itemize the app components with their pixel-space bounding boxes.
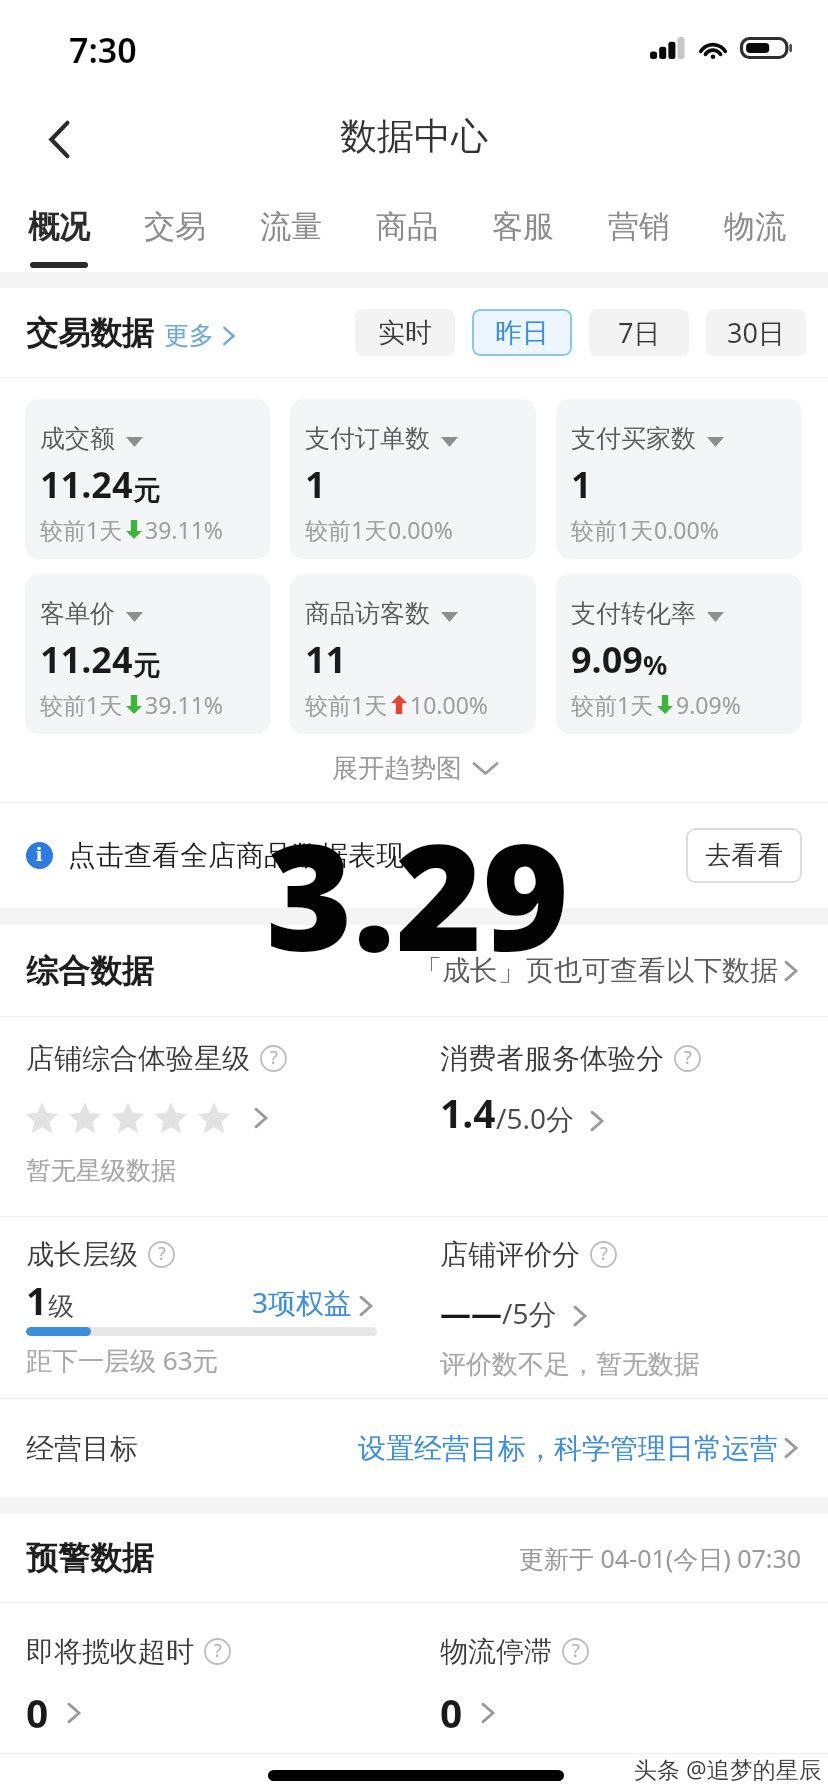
staticText: 设置经营目标，科学管理日常运营 xyxy=(358,1431,778,1466)
staticText: 元 xyxy=(133,649,160,683)
button[interactable]: 商品 xyxy=(349,190,465,272)
staticText: 1.4 xyxy=(440,1086,496,1139)
staticText: 0 xyxy=(26,1686,49,1739)
staticText: 支付订单数 xyxy=(305,423,430,454)
staticText: 7:30 xyxy=(69,27,137,73)
staticText: 展开趋势图 xyxy=(332,752,462,785)
button[interactable]: 客单价 xyxy=(25,574,270,734)
button[interactable]: 物流 xyxy=(697,190,813,272)
staticText: 支付转化率 xyxy=(571,598,696,629)
staticText: 即将揽收超时 xyxy=(26,1634,194,1669)
staticText: 11.24 xyxy=(40,460,133,509)
button[interactable]: 成长层级 xyxy=(0,1217,413,1398)
staticText: ? xyxy=(158,1241,166,1266)
button[interactable]: 流量 xyxy=(233,190,349,272)
button[interactable]: 概况 xyxy=(0,190,117,272)
button[interactable]: 商品访客数 xyxy=(290,574,536,734)
staticText: 11.24 xyxy=(40,635,133,684)
staticText: 商品 xyxy=(376,207,438,246)
staticText: 成交额 xyxy=(40,423,115,454)
button[interactable]: 「成长」页也可查看以下数据 xyxy=(414,953,802,988)
staticText: 物流停滞 xyxy=(440,1634,552,1669)
staticText: 1 xyxy=(305,460,326,509)
staticText: 经营目标 xyxy=(26,1431,138,1466)
staticText: 评价数不足，暂无数据 xyxy=(440,1348,700,1381)
button[interactable]: 支付订单数 xyxy=(290,399,536,559)
staticText: 3.29 xyxy=(266,793,569,995)
button[interactable]: 经营目标 xyxy=(0,1399,828,1497)
button[interactable]: 支付买家数 xyxy=(556,399,802,559)
button[interactable]: 实时 xyxy=(355,309,455,356)
staticText: 消费者服务体验分 xyxy=(440,1041,664,1076)
staticText: 交易 xyxy=(144,207,206,246)
staticText: 较前1天 xyxy=(305,689,388,720)
staticText: 「成长」页也可查看以下数据 xyxy=(414,953,778,988)
staticText: 概况 xyxy=(28,207,90,246)
staticText: 3项权益 xyxy=(252,1283,353,1321)
button[interactable]: 交易 xyxy=(117,190,233,272)
button[interactable]: 消费者服务体验分 xyxy=(414,1017,828,1216)
staticText: 交易数据 xyxy=(26,313,154,353)
staticText: ? xyxy=(684,1045,692,1070)
staticText: 点击查看全店商品数据表现 xyxy=(68,838,404,873)
staticText: ? xyxy=(600,1241,608,1266)
staticText: 11 xyxy=(305,635,347,684)
staticText: 暂无星级数据 xyxy=(26,1155,176,1186)
button[interactable]: 物流停滞 xyxy=(414,1603,828,1753)
staticText: —— xyxy=(440,1292,502,1334)
button[interactable]: 支付转化率 xyxy=(556,574,802,734)
staticText: 营销 xyxy=(608,207,670,246)
button[interactable]: 昨日 xyxy=(472,309,572,356)
staticText: 去看看 xyxy=(705,839,783,872)
staticText: 数据中心 xyxy=(340,113,488,160)
staticText: 店铺评价分 xyxy=(440,1237,580,1272)
staticText: 综合数据 xyxy=(26,951,154,991)
staticText: 39.11% xyxy=(145,514,223,545)
staticText: 元 xyxy=(133,474,160,508)
staticText: 商品访客数 xyxy=(305,598,430,629)
staticText: 较前1天 xyxy=(571,514,654,545)
staticText: 更多 xyxy=(164,320,214,351)
staticText: 距下一层级 63元 xyxy=(26,1342,219,1378)
staticText: 预警数据 xyxy=(26,1538,154,1578)
staticText: ? xyxy=(270,1045,278,1070)
staticText: i xyxy=(36,842,43,867)
staticText: 较前1天 xyxy=(571,689,654,720)
staticText: 较前1天 xyxy=(40,514,123,545)
staticText: 0.00% xyxy=(654,514,719,545)
staticText: 物流 xyxy=(724,207,786,246)
staticText: 较前1天 xyxy=(305,514,388,545)
button[interactable]: 客服 xyxy=(465,190,581,272)
button[interactable]: 店铺评价分 xyxy=(414,1217,828,1398)
staticText: 0.00% xyxy=(388,514,453,545)
staticText: 7日 xyxy=(618,314,661,351)
staticText: 昨日 xyxy=(495,316,549,350)
staticText: 9.09% xyxy=(676,689,741,720)
button[interactable]: 成交额 xyxy=(25,399,270,559)
staticText: /5.0分 xyxy=(496,1099,574,1137)
button[interactable]: 展开趋势图 xyxy=(0,734,828,802)
button[interactable]: Back xyxy=(22,102,96,176)
button[interactable]: 营销 xyxy=(581,190,697,272)
staticText: 客单价 xyxy=(40,598,115,629)
staticText: 较前1天 xyxy=(40,689,123,720)
staticText: 10.00% xyxy=(410,689,488,720)
staticText: 级 xyxy=(48,1290,74,1323)
button[interactable]: 去看看 xyxy=(686,828,802,883)
staticText: 成长层级 xyxy=(26,1237,138,1272)
staticText: 头条 @追梦的星辰 xyxy=(634,1753,822,1784)
button[interactable]: 即将揽收超时 xyxy=(0,1603,414,1753)
button[interactable]: 店铺综合体验星级 xyxy=(0,1017,413,1216)
staticText: % xyxy=(643,646,668,683)
staticText: 30日 xyxy=(727,314,785,351)
staticText: 1 xyxy=(571,460,592,509)
button[interactable]: 30日 xyxy=(706,309,806,356)
staticText: ? xyxy=(572,1638,580,1663)
button[interactable]: 更多 xyxy=(164,317,239,348)
staticText: 支付买家数 xyxy=(571,423,696,454)
staticText: 流量 xyxy=(260,207,322,246)
staticText: 0 xyxy=(440,1686,463,1739)
staticText: 客服 xyxy=(492,207,554,246)
button[interactable]: 7日 xyxy=(589,309,689,356)
staticText: /5分 xyxy=(502,1294,557,1332)
